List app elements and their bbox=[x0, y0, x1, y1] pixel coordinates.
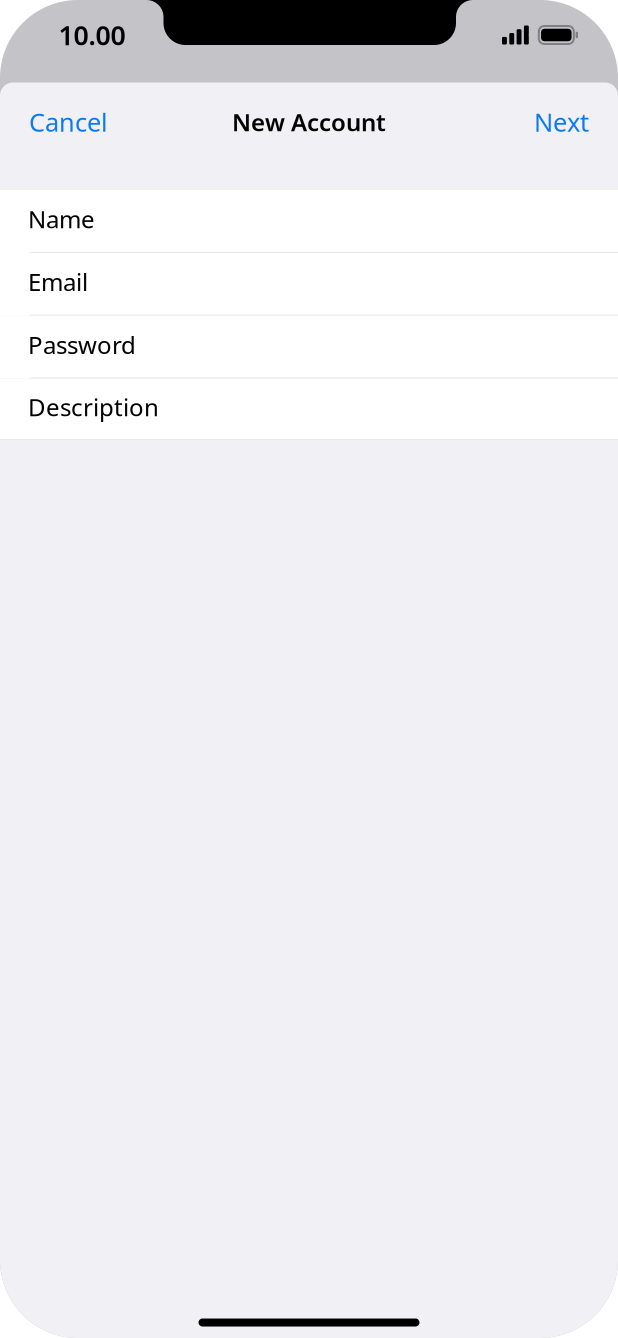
button[interactable]: Password bbox=[0, 316, 618, 379]
staticText: Description bbox=[28, 391, 159, 423]
button[interactable]: Email bbox=[0, 253, 618, 316]
staticText: New Account bbox=[232, 106, 386, 138]
button[interactable]: Next bbox=[526, 92, 597, 152]
button[interactable]: Name bbox=[0, 190, 618, 253]
staticText: Cancel bbox=[29, 105, 108, 139]
staticText: Password bbox=[28, 329, 136, 361]
button[interactable]: Cancel bbox=[21, 92, 116, 152]
button[interactable]: Description bbox=[0, 379, 618, 439]
staticText: Name bbox=[28, 203, 95, 235]
staticText: Email bbox=[28, 266, 88, 298]
staticText: 10.00 bbox=[58, 17, 125, 53]
staticText: Next bbox=[534, 105, 589, 139]
